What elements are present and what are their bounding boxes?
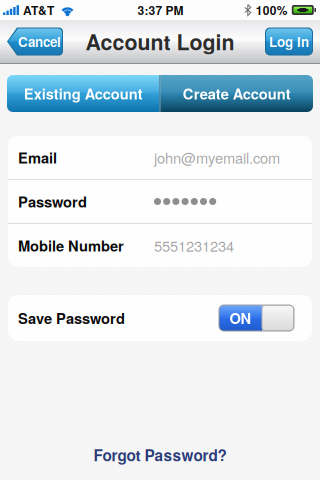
staticText: ON [229, 307, 251, 328]
staticText: 3:37 PM [137, 1, 183, 19]
staticText: Cancel [18, 32, 61, 51]
staticText: Create Account [183, 83, 291, 104]
button[interactable]: Existing Account [7, 75, 159, 112]
staticText: 5551231234 [154, 235, 234, 256]
button[interactable]: Forgot Password? [0, 442, 320, 468]
staticText: Email [18, 147, 57, 168]
button[interactable]: Cancel [7, 27, 63, 55]
staticText: 100% [256, 1, 288, 19]
staticText: Existing Account [24, 83, 143, 104]
button[interactable]: ON [219, 305, 294, 331]
staticText: AT&T [23, 1, 54, 19]
staticText: Mobile Number [18, 235, 124, 256]
staticText: Save Password [18, 307, 125, 328]
staticText: Account Login [85, 26, 234, 57]
button[interactable]: Create Account [160, 75, 313, 112]
staticText: Log In [269, 32, 309, 51]
staticText: Password [18, 191, 87, 212]
button[interactable]: Log In [265, 27, 313, 55]
staticText: Forgot Password? [93, 444, 226, 466]
staticText: john@myemail.com [154, 147, 280, 168]
